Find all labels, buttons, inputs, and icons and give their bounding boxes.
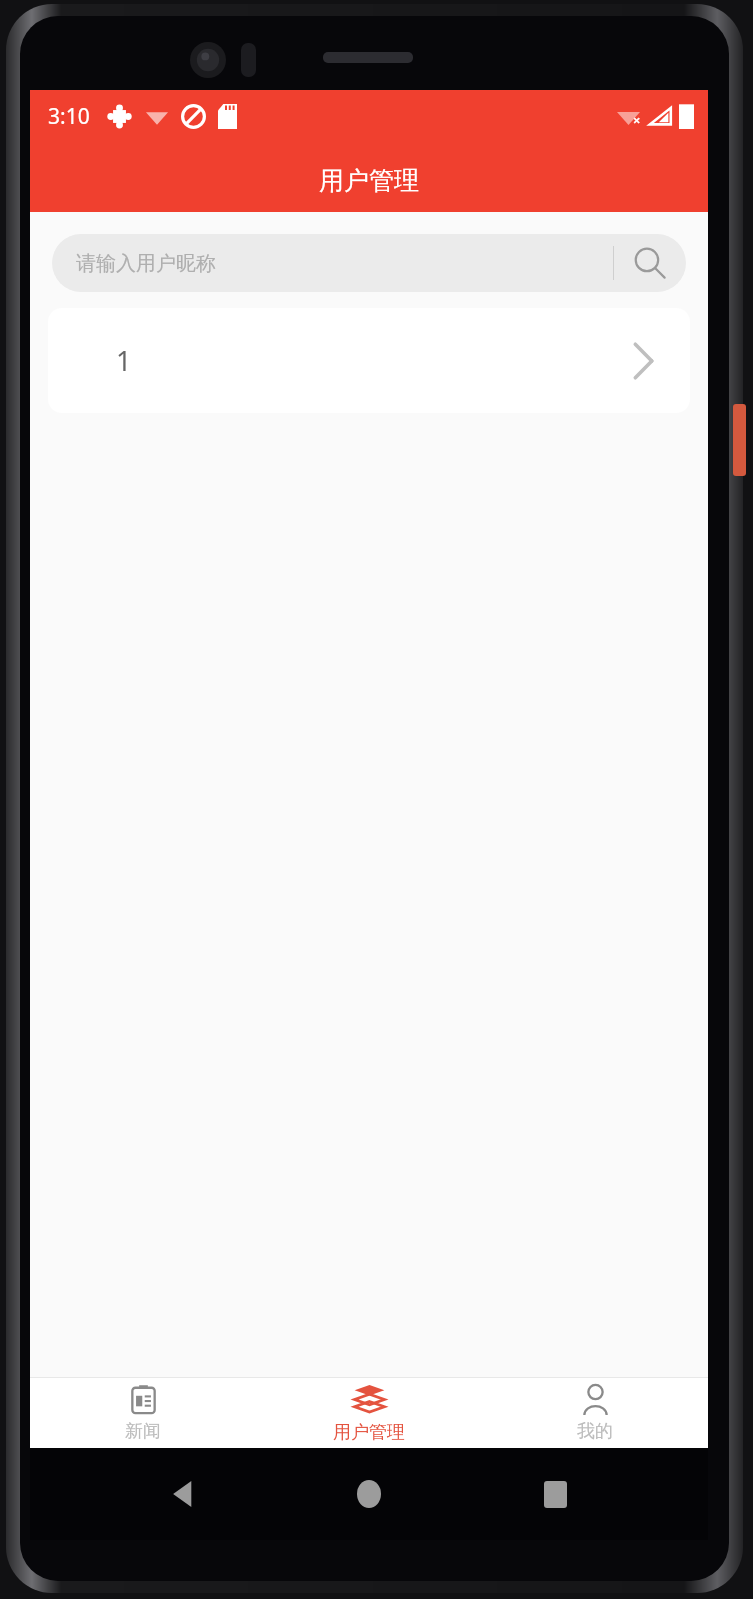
staticText: 1 <box>116 342 632 379</box>
staticText: 我的 <box>577 1420 613 1443</box>
staticText: × <box>633 111 641 129</box>
button[interactable]: Home <box>276 1480 462 1508</box>
staticText: 请输入用户昵称 <box>76 251 613 276</box>
button[interactable]: 1 <box>48 308 690 413</box>
staticText: 新闻 <box>125 1420 161 1443</box>
staticText: 用户管理 <box>30 165 708 196</box>
staticText: 3:10 <box>48 102 90 131</box>
button[interactable]: Search <box>614 234 686 292</box>
button[interactable]: 用户管理 <box>256 1378 482 1448</box>
button[interactable]: Back <box>90 1481 276 1507</box>
button[interactable]: 请输入用户昵称 <box>52 234 686 292</box>
button[interactable]: Recents <box>462 1481 648 1508</box>
staticText: 用户管理 <box>333 1421 405 1444</box>
button[interactable]: 新闻 <box>30 1378 256 1448</box>
button[interactable]: 我的 <box>482 1378 708 1448</box>
